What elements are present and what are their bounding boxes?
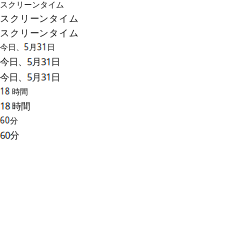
staticText: スクリーンタイム xyxy=(0,27,79,39)
staticText: スクリーンタイム xyxy=(0,0,64,10)
staticText: 今日、5月31日 xyxy=(0,55,60,68)
staticText: 60分 xyxy=(0,129,19,141)
staticText: 18 時間 xyxy=(0,86,28,97)
staticText: 18 時間 xyxy=(0,100,30,112)
staticText: 今日、5月31日 xyxy=(0,42,55,52)
staticText: 60分 xyxy=(0,115,18,126)
staticText: 今日、5月31日 xyxy=(0,71,60,83)
staticText: スクリーンタイム xyxy=(0,13,79,24)
